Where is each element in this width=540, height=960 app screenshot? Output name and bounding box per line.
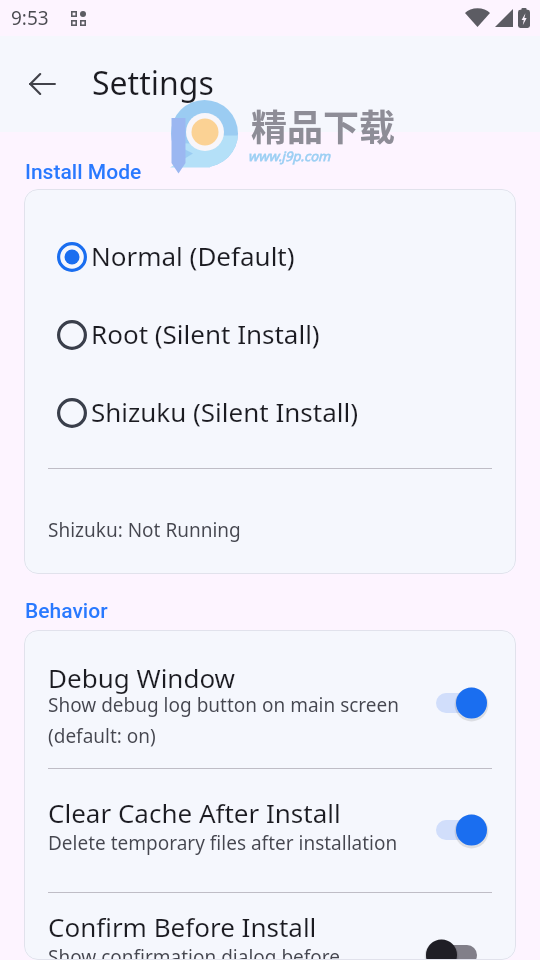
staticText: Shizuku (Silent Install) bbox=[91, 394, 358, 429]
staticText: 9:53 bbox=[11, 5, 49, 31]
staticText: Show confirmation dialog before bbox=[48, 944, 341, 960]
staticText: Delete temporary files after installatio… bbox=[48, 830, 398, 856]
button[interactable]: Debug Window bbox=[24, 630, 516, 768]
staticText: Normal (Default) bbox=[91, 238, 295, 273]
staticText: 精品下载 bbox=[251, 99, 396, 151]
staticText: Root (Silent Install) bbox=[91, 316, 320, 351]
staticText: Clear Cache After Install bbox=[48, 795, 341, 830]
button[interactable]: Normal (Default) bbox=[24, 216, 516, 294]
staticText: Confirm Before Install bbox=[48, 909, 317, 944]
button[interactable]: Toggle on bbox=[436, 683, 498, 723]
staticText: Show debug log button on main screen (de… bbox=[48, 692, 400, 749]
staticText: Settings bbox=[92, 61, 214, 105]
button[interactable]: Shizuku (Silent Install) bbox=[24, 372, 516, 450]
button[interactable]: Root (Silent Install) bbox=[24, 294, 516, 372]
button[interactable]: Back bbox=[18, 60, 66, 108]
button[interactable]: Clear Cache After Install bbox=[24, 769, 516, 892]
button[interactable]: Toggle on bbox=[436, 810, 498, 850]
staticText: Debug Window bbox=[48, 660, 236, 695]
staticText: www.j9p.com bbox=[248, 147, 331, 165]
staticText: Behavior bbox=[25, 599, 108, 624]
staticText: Shizuku: Not Running bbox=[48, 517, 241, 543]
button[interactable]: Confirm Before Install bbox=[24, 893, 516, 960]
staticText: Install Mode bbox=[25, 160, 142, 185]
button[interactable]: Toggle off bbox=[436, 950, 498, 960]
